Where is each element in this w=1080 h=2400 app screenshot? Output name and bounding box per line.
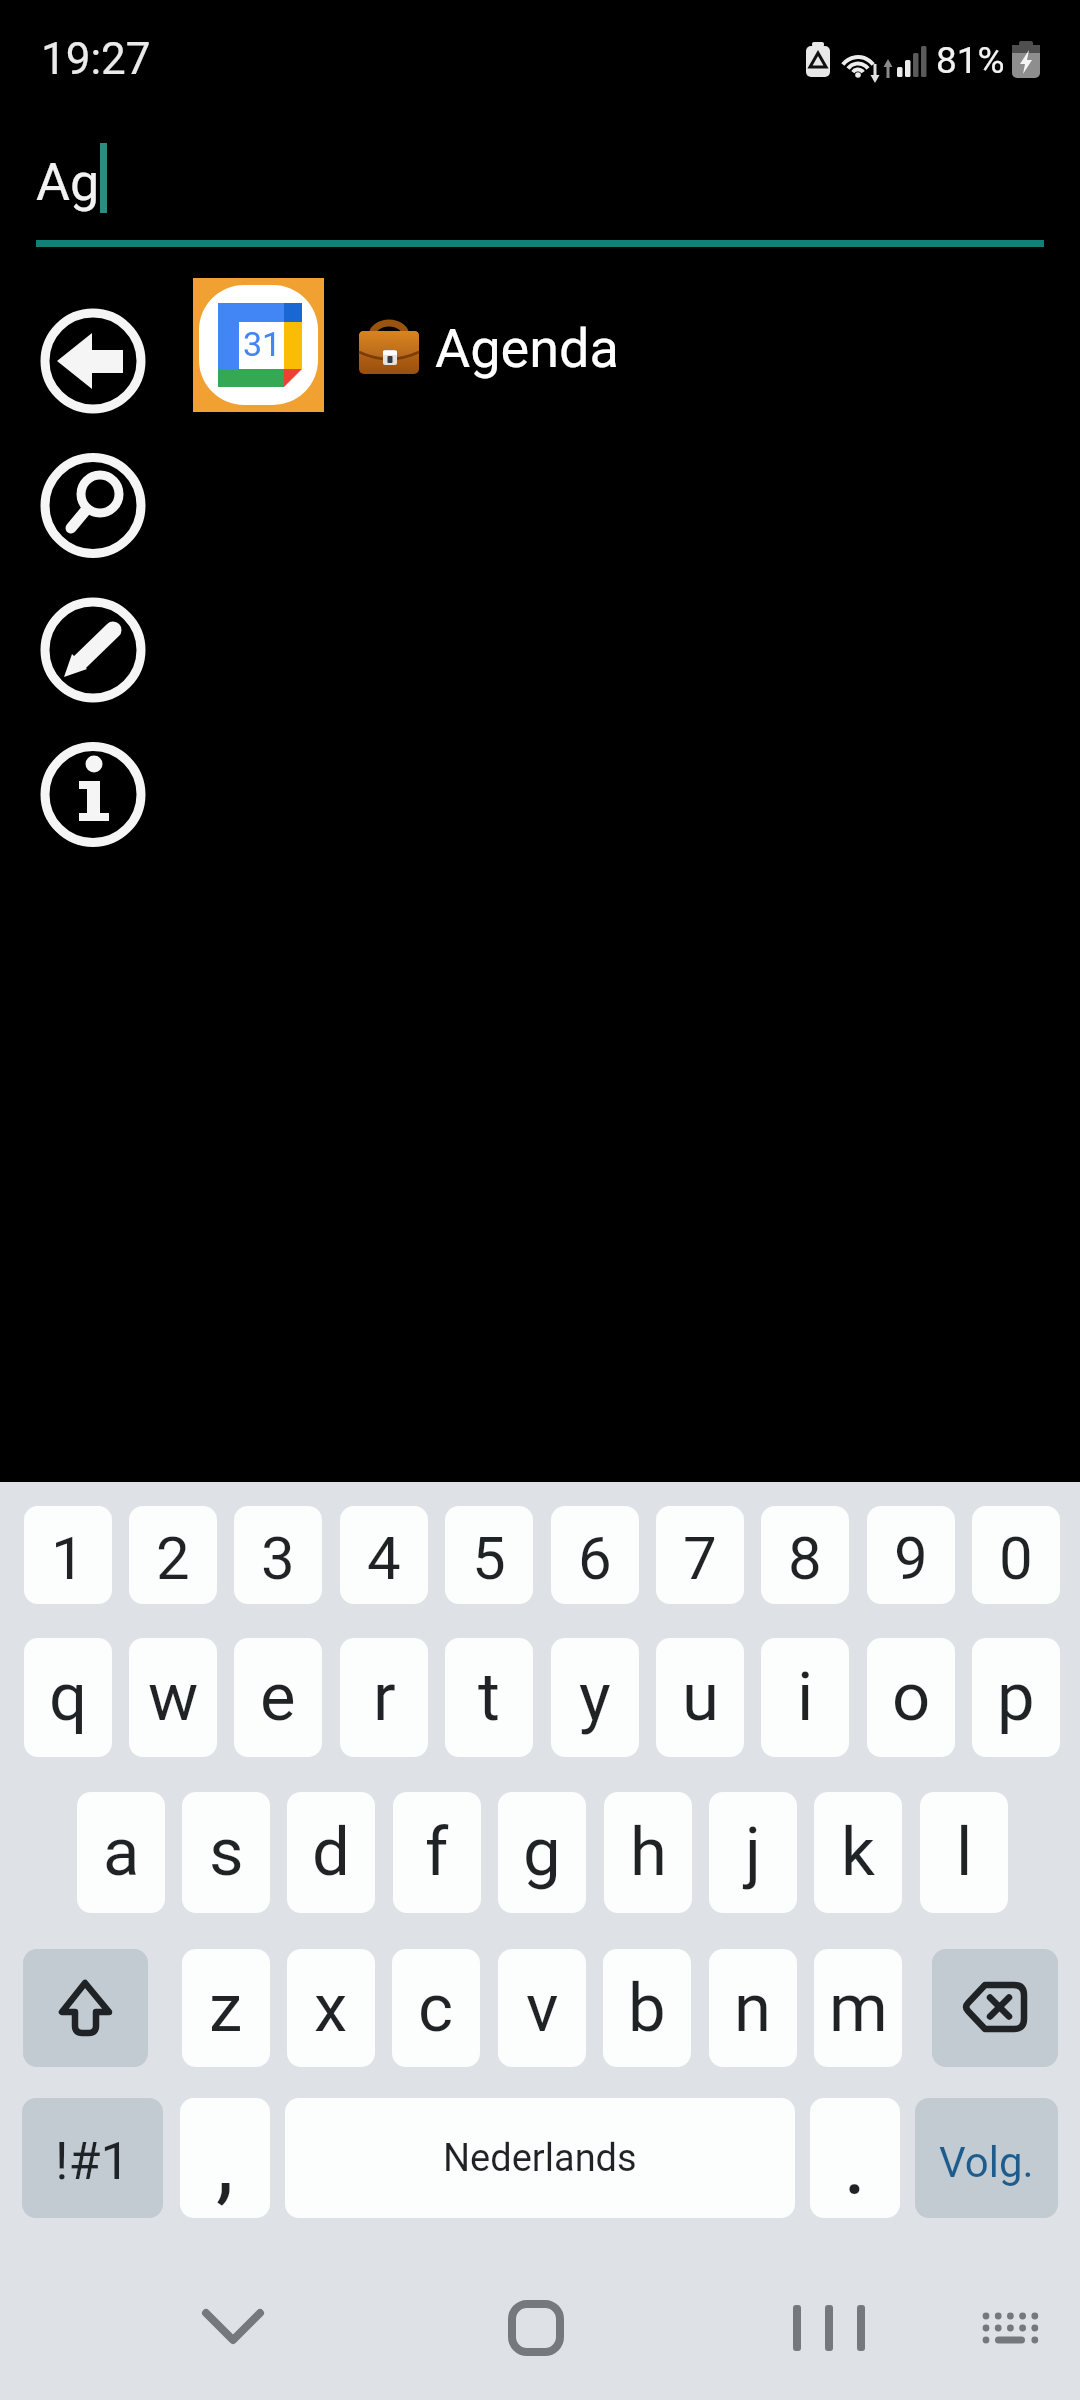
button[interactable] (960, 2290, 1060, 2370)
button[interactable] (37, 738, 149, 850)
staticText: Volg. (939, 2138, 1034, 2187)
button[interactable]: n (709, 1949, 797, 2067)
staticText: a (103, 1813, 140, 1892)
button[interactable]: k (814, 1792, 902, 1913)
button[interactable] (485, 2290, 585, 2370)
button[interactable]: a (77, 1792, 165, 1913)
button[interactable]: v (498, 1949, 586, 2067)
staticText: v (526, 1969, 559, 2048)
staticText: h (630, 1813, 667, 1892)
staticText: 5 (472, 1523, 506, 1593)
button[interactable] (37, 305, 149, 417)
staticText: 31 (243, 324, 282, 364)
button[interactable]: 1 (24, 1506, 112, 1604)
staticText: Agenda (435, 317, 619, 380)
button[interactable]: w (129, 1638, 217, 1757)
staticText: 9 (894, 1523, 928, 1593)
button[interactable]: 3 (234, 1506, 322, 1604)
button[interactable]: 9 (867, 1506, 955, 1604)
button[interactable]: c (392, 1949, 480, 2067)
button[interactable]: 6 (551, 1506, 639, 1604)
staticText: Nederlands (443, 2136, 637, 2181)
staticText: l (956, 1813, 973, 1892)
staticText: k (841, 1813, 875, 1892)
staticText: m (829, 1969, 888, 2048)
button[interactable] (37, 594, 149, 706)
button[interactable]: h (604, 1792, 692, 1913)
button[interactable]: e (234, 1638, 322, 1757)
button[interactable]: t (445, 1638, 533, 1757)
staticText: z (209, 1969, 243, 2048)
staticText: i (797, 1658, 814, 1737)
staticText: 6 (578, 1523, 612, 1593)
button[interactable]: q (24, 1638, 112, 1757)
button[interactable]: d (287, 1792, 375, 1913)
button[interactable]: i (761, 1638, 849, 1757)
button[interactable] (183, 2290, 283, 2370)
button[interactable]: s (182, 1792, 270, 1913)
staticText: f (425, 1813, 449, 1892)
staticText: y (579, 1658, 611, 1737)
staticText: 0 (999, 1523, 1033, 1593)
button[interactable] (780, 2290, 880, 2370)
button[interactable]: r (340, 1638, 428, 1757)
button[interactable]: l (920, 1792, 1008, 1913)
staticText: 8 (788, 1523, 822, 1593)
staticText: 81% (936, 39, 1005, 82)
button[interactable] (23, 1949, 148, 2067)
button[interactable]: z (182, 1949, 270, 2067)
staticText: q (49, 1658, 88, 1737)
button[interactable]: u (656, 1638, 744, 1757)
button[interactable] (932, 1949, 1058, 2067)
staticText: , (216, 2110, 234, 2215)
staticText: o (892, 1658, 931, 1737)
staticText: g (523, 1813, 561, 1892)
staticText: r (373, 1658, 396, 1737)
staticText: !#1 (55, 2131, 130, 2192)
button[interactable]: Volg. (915, 2098, 1058, 2218)
staticText: 7 (683, 1523, 717, 1593)
staticText: 3 (261, 1523, 295, 1593)
staticText: t (478, 1658, 500, 1737)
button[interactable]: f (393, 1792, 481, 1913)
staticText: e (260, 1658, 296, 1737)
staticText: 19:27 (41, 33, 151, 85)
button[interactable]: !#1 (22, 2098, 163, 2218)
staticText: j (745, 1813, 762, 1892)
staticText: p (997, 1658, 1035, 1737)
button[interactable]: b (603, 1949, 691, 2067)
staticText: c (418, 1969, 454, 2048)
button[interactable]: y (551, 1638, 639, 1757)
staticText: Ag (36, 152, 100, 213)
button[interactable]: g (498, 1792, 586, 1913)
button[interactable]: o (867, 1638, 955, 1757)
staticText: w (148, 1658, 199, 1737)
button[interactable]: 8 (761, 1506, 849, 1604)
staticText: u (682, 1658, 719, 1737)
button[interactable]: Nederlands (285, 2098, 795, 2218)
staticText: n (734, 1969, 772, 2048)
button[interactable]: . (810, 2098, 900, 2218)
button[interactable]: m (814, 1949, 902, 2067)
button[interactable]: , (180, 2098, 270, 2218)
button[interactable]: 5 (445, 1506, 533, 1604)
staticText: b (628, 1969, 666, 2048)
button[interactable]: p (972, 1638, 1060, 1757)
button[interactable]: 2 (129, 1506, 217, 1604)
staticText: 2 (156, 1523, 190, 1593)
staticText: d (312, 1813, 350, 1892)
button[interactable] (37, 449, 149, 561)
staticText: s (209, 1813, 244, 1892)
button[interactable]: 31 (193, 278, 324, 412)
button[interactable]: 0 (972, 1506, 1060, 1604)
staticText: . (843, 2110, 867, 2215)
button[interactable]: x (287, 1949, 375, 2067)
staticText: 4 (367, 1523, 401, 1593)
staticText: x (314, 1969, 348, 2048)
staticText: 1 (51, 1523, 85, 1593)
button[interactable]: 7 (656, 1506, 744, 1604)
button[interactable]: j (709, 1792, 797, 1913)
button[interactable]: 4 (340, 1506, 428, 1604)
